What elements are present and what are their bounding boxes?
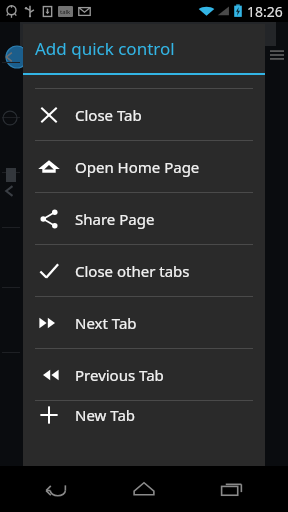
- staticText: Close other tabs: [75, 261, 190, 281]
- button[interactable]: Close other tabs: [23, 245, 265, 296]
- button[interactable]: Recents: [200, 466, 264, 512]
- button[interactable]: New Tab: [23, 401, 265, 428]
- button[interactable]: Home: [112, 466, 176, 512]
- staticText: Share Page: [75, 209, 155, 229]
- staticText: Close Tab: [75, 105, 142, 125]
- staticText: 18:26: [247, 2, 283, 21]
- staticText: Add quick control: [35, 37, 175, 60]
- button[interactable]: Back: [24, 466, 88, 512]
- button[interactable]: Open Home Page: [23, 141, 265, 192]
- staticText: Previous Tab: [75, 365, 164, 385]
- button[interactable]: Close Tab: [23, 89, 265, 140]
- staticText: talk: [60, 8, 71, 16]
- staticText: New Tab: [75, 405, 136, 425]
- button[interactable]: Next Tab: [23, 297, 265, 348]
- staticText: Next Tab: [75, 313, 137, 333]
- button[interactable]: Previous Tab: [23, 349, 265, 400]
- staticText: Open Home Page: [75, 157, 200, 177]
- button[interactable]: Share Page: [23, 193, 265, 244]
